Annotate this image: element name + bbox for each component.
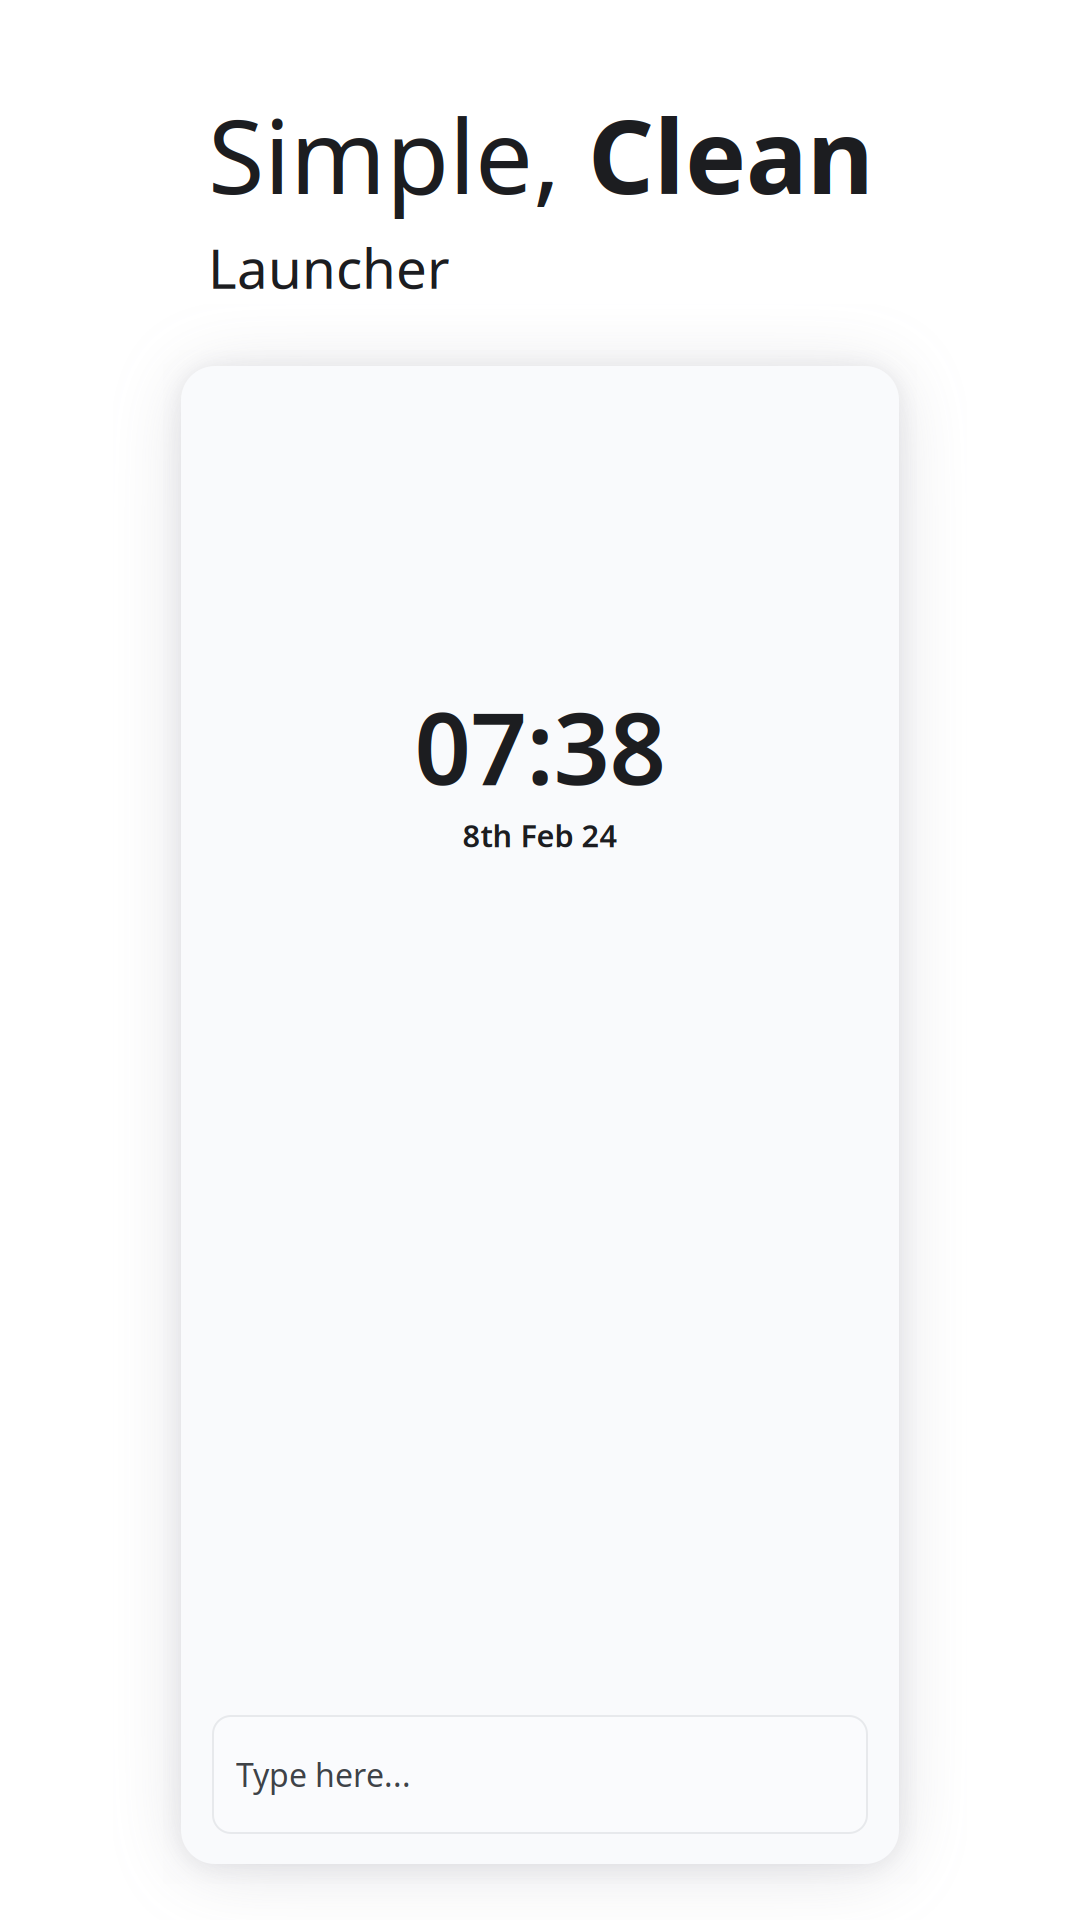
staticText: 07:38 bbox=[414, 681, 665, 812]
button[interactable]: Type here... bbox=[212, 1715, 868, 1834]
staticText: 8th Feb 24 bbox=[462, 815, 617, 856]
staticText: Launcher bbox=[208, 231, 450, 304]
staticText: Type here... bbox=[236, 1753, 411, 1796]
staticText: Simple, Clean bbox=[208, 86, 874, 222]
